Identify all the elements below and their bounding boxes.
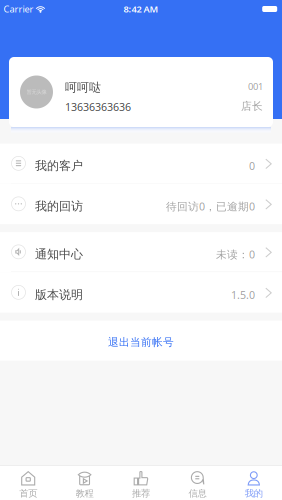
staticText: 1.5.0 bbox=[231, 288, 255, 302]
staticText: 我的 bbox=[245, 488, 263, 499]
staticText: 推荐 bbox=[132, 488, 150, 499]
button[interactable]: 退出当前帐号 bbox=[0, 321, 282, 361]
staticText: 通知中心 bbox=[35, 247, 83, 262]
staticText: 店长 bbox=[241, 100, 263, 113]
staticText: 暂无头像 bbox=[26, 89, 46, 95]
staticText: 信息 bbox=[188, 488, 206, 499]
staticText: 我的回访 bbox=[35, 199, 83, 214]
staticText: 0 bbox=[249, 159, 255, 173]
staticText: 001 bbox=[248, 80, 263, 93]
button[interactable]: 推荐 bbox=[113, 464, 169, 500]
staticText: 8:42 AM bbox=[123, 3, 158, 15]
staticText: 退出当前帐号 bbox=[108, 335, 174, 349]
staticText: 版本说明 bbox=[35, 287, 83, 302]
button[interactable]: 我的客户 bbox=[0, 144, 282, 184]
button[interactable]: 信息 bbox=[169, 464, 226, 500]
staticText: 教程 bbox=[76, 488, 94, 499]
staticText: 我的客户 bbox=[35, 158, 83, 173]
button[interactable]: 教程 bbox=[56, 464, 113, 500]
button[interactable]: 我的回访 bbox=[0, 184, 282, 224]
staticText: 呵呵哒 bbox=[65, 80, 101, 95]
staticText: Carrier bbox=[3, 3, 33, 15]
button[interactable]: 我的 bbox=[226, 464, 282, 500]
button[interactable]: 版本说明 bbox=[0, 272, 282, 313]
button[interactable]: 通知中心 bbox=[0, 232, 282, 272]
staticText: 首页 bbox=[19, 488, 37, 499]
staticText: 未读：0 bbox=[216, 247, 255, 261]
staticText: 13636363636 bbox=[65, 100, 131, 114]
button[interactable]: 首页 bbox=[0, 464, 56, 500]
staticText: 待回访0，已逾期0 bbox=[166, 199, 255, 213]
